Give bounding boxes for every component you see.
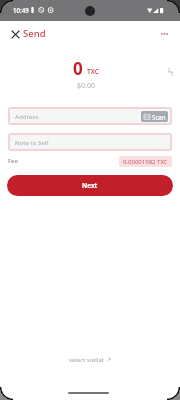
staticText: Send	[23, 27, 46, 40]
button[interactable]: Note to Self	[8, 133, 172, 151]
staticText: Scan	[152, 113, 166, 121]
staticText: 0.00001582 TXC	[123, 158, 168, 166]
staticText: Next	[82, 181, 98, 190]
staticText: Note to Self	[15, 138, 49, 146]
button[interactable]: Next	[7, 175, 173, 196]
button[interactable]: Address	[8, 107, 172, 125]
button[interactable]: Swap currency	[162, 64, 178, 80]
staticText: 0	[73, 57, 83, 80]
staticText: TXC	[87, 67, 100, 76]
staticText: $0.00	[77, 81, 95, 91]
button[interactable]: Scan QR code	[141, 111, 168, 122]
button[interactable]: select wallet	[0, 352, 180, 366]
staticText: select wallet	[69, 355, 105, 363]
button[interactable]: Close	[0, 22, 23, 46]
button[interactable]: More options	[152, 21, 176, 46]
staticText: Address	[15, 112, 39, 120]
staticText: 10:49	[13, 6, 29, 14]
staticText: Fee	[8, 157, 18, 165]
